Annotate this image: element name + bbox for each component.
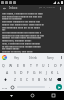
staticText: U [42, 63, 45, 68]
button[interactable]: D [18, 69, 25, 76]
button[interactable]: Sorry [42, 53, 59, 62]
staticText: P [60, 63, 63, 68]
staticText: Also, I attached the latest version [2, 42, 40, 45]
staticText: we meet again. [2, 47, 20, 50]
staticText: Y [36, 63, 38, 68]
staticText: of the deck for your review before [2, 45, 41, 48]
button[interactable]: X [18, 76, 24, 83]
button[interactable]: L [55, 69, 61, 76]
button[interactable]: B [36, 76, 42, 83]
staticText: K [51, 70, 54, 75]
staticText: ?123 [2, 86, 8, 89]
staticText: C [26, 77, 29, 82]
staticText: week on Tuesday. [2, 17, 23, 20]
staticText: E [17, 63, 19, 68]
staticText: S [14, 70, 16, 75]
staticText: on. [2, 28, 6, 31]
staticText: you about the meeting we had last [2, 14, 42, 17]
button[interactable]: A [4, 69, 11, 76]
button[interactable]: U [40, 62, 46, 69]
staticText: afternoon, anytime really. [2, 38, 32, 41]
staticText: X [20, 77, 22, 82]
button[interactable]: P [58, 62, 64, 69]
button[interactable]: I [46, 62, 52, 69]
staticText: H [39, 70, 42, 75]
staticText: details. I'm free most of tomorrow [2, 36, 42, 39]
staticText: real potential here for us to build [2, 26, 40, 29]
staticText: Jan 14, 2:45 PM [39, 6, 55, 9]
staticText: I've been thinking a lot about the [2, 20, 40, 23]
staticText: I think [29, 56, 38, 60]
button[interactable]: V [30, 76, 36, 83]
button[interactable]: R [21, 62, 28, 69]
button[interactable]: Google search [0, 53, 8, 62]
button[interactable]: Y [34, 62, 40, 69]
staticText: on. [2, 27, 6, 30]
staticText: M [49, 77, 53, 82]
button[interactable]: E [14, 62, 21, 69]
button[interactable]: T [28, 62, 34, 69]
button[interactable]: Backspace [54, 76, 64, 83]
button[interactable]: N [42, 76, 48, 83]
button[interactable]: Emoji [9, 83, 16, 91]
staticText: afternoon, anytime really. [2, 39, 32, 42]
button[interactable]: O [52, 62, 58, 69]
staticText: N [44, 77, 47, 82]
button[interactable]: Z [11, 76, 18, 83]
staticText: Let me know when you have got a [2, 31, 42, 34]
button[interactable]: More options [58, 6, 62, 10]
staticText: . [49, 85, 50, 89]
button[interactable]: Space [16, 83, 46, 91]
staticText: A [6, 70, 9, 75]
staticText: I [48, 63, 50, 68]
staticText: you about the meeting we had last [2, 15, 42, 18]
staticText: Z [14, 77, 16, 82]
button[interactable]: ?123 [0, 83, 9, 91]
staticText: B [38, 77, 41, 82]
staticText: Hey there, I wanted to check in with [2, 12, 43, 15]
button[interactable]: Send [53, 83, 64, 91]
button[interactable]: Recents [43, 91, 64, 100]
button[interactable]: Hey [8, 53, 25, 62]
button[interactable]: Back [2, 6, 6, 10]
staticText: F [27, 70, 29, 75]
button[interactable]: G [31, 69, 37, 76]
staticText: Sorry [47, 56, 54, 60]
button[interactable]: Q [0, 62, 7, 69]
button[interactable]: S [11, 69, 18, 76]
button[interactable]: K [49, 69, 55, 76]
staticText: I've been thinking a lot about the [2, 19, 40, 22]
button[interactable]: M [48, 76, 54, 83]
button[interactable]: W [7, 62, 14, 69]
staticText: R [23, 63, 26, 68]
staticText: Also, I attached the latest version [2, 41, 40, 44]
staticText: we meet again. [2, 46, 20, 49]
staticText: L [57, 70, 59, 75]
staticText: Hey there, I wanted to check in with [2, 11, 43, 14]
staticText: D [20, 70, 23, 75]
button[interactable]: More suggestions [59, 53, 64, 62]
button[interactable]: C [24, 76, 30, 83]
staticText: W [9, 63, 13, 68]
button[interactable]: Back [0, 91, 22, 100]
staticText: moment to talk through some of the [2, 34, 44, 37]
button[interactable]: Shift [0, 76, 11, 83]
staticText: Q [2, 63, 5, 68]
staticText: V [32, 77, 35, 82]
staticText: J [46, 70, 47, 75]
staticText: of the deck for your review before [2, 44, 41, 47]
button[interactable]: F [25, 69, 31, 76]
button[interactable]: H [37, 69, 43, 76]
staticText: points you raised and I think there is [2, 23, 44, 26]
staticText: Let me know when you have got a [2, 30, 42, 33]
button[interactable]: Home [22, 91, 43, 100]
staticText: O [54, 63, 57, 68]
staticText: real potential here for us to build [2, 25, 40, 28]
button[interactable]: J [43, 69, 49, 76]
staticText: Inbox [9, 6, 18, 10]
staticText: points you raised and I think there is [2, 22, 44, 25]
button[interactable]: I think [25, 53, 42, 62]
staticText: moment to talk through some of the [2, 33, 44, 36]
staticText: week on Tuesday. [2, 16, 23, 19]
